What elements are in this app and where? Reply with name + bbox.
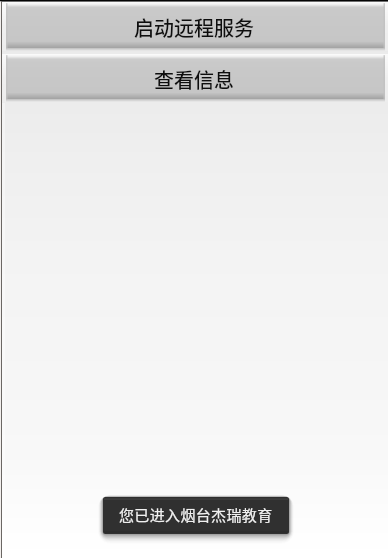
button[interactable]: 启动远程服务 [0,2,388,51]
button[interactable]: 查看信息 [0,54,388,102]
button[interactable]: 您已进入烟台杰瑞教育 [103,497,289,534]
staticText: 查看信息 [154,65,234,94]
staticText: 启动远程服务 [134,13,254,42]
staticText: 您已进入烟台杰瑞教育 [119,504,273,526]
